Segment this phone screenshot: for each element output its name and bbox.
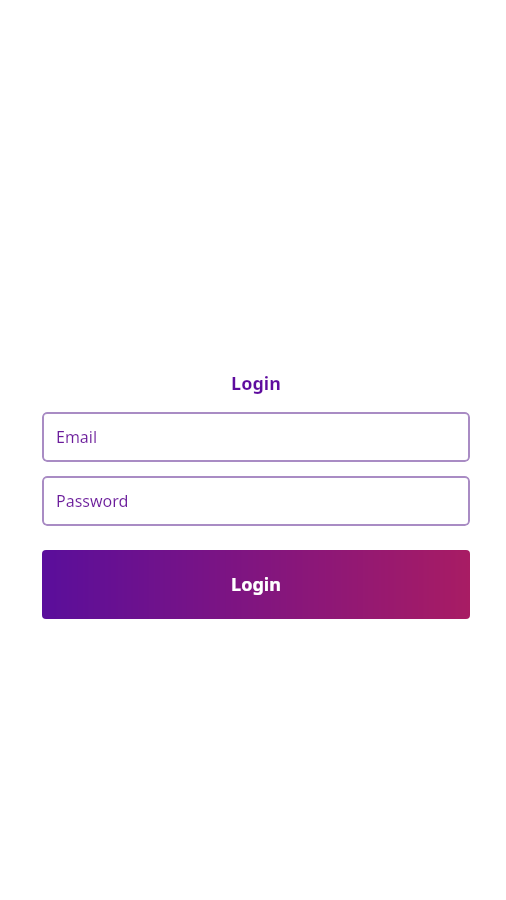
button[interactable]: Password [42,476,470,526]
staticText: Email [56,426,98,448]
staticText: Login [231,371,281,396]
button[interactable]: Login [42,550,470,619]
button[interactable]: Email [42,412,470,462]
staticText: Login [231,572,281,597]
staticText: Password [56,490,129,512]
